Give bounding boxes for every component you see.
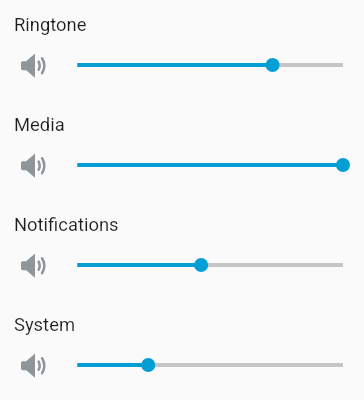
staticText: Ringtone: [14, 14, 87, 36]
staticText: Media: [14, 114, 65, 136]
button[interactable]: System volume slider: [60, 345, 360, 385]
button[interactable]: Ringtone volume slider: [60, 45, 360, 85]
button[interactable]: Notifications volume slider: [60, 245, 360, 285]
button[interactable]: Mute System volume: [8, 345, 48, 385]
button[interactable]: Mute Ringtone volume: [8, 45, 48, 85]
button[interactable]: Mute Notifications volume: [8, 245, 48, 285]
staticText: Notifications: [14, 214, 119, 236]
button[interactable]: Mute Media volume: [8, 145, 48, 185]
button[interactable]: Media volume slider: [60, 145, 360, 185]
staticText: System: [14, 314, 76, 336]
